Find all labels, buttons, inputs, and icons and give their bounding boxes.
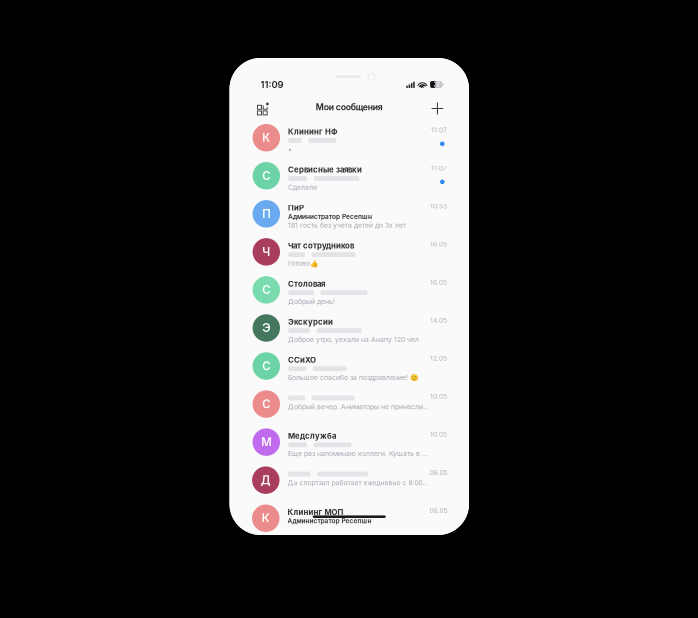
staticText: Добрый день! [288,297,335,305]
staticText: Администратор Ресепшн [288,213,372,220]
staticText: 22 [433,81,439,88]
staticText: Ч [262,245,270,259]
staticText: Сервисные заявки [288,165,362,174]
staticText: 181 гость без учета детей до 3х лет [288,221,406,229]
staticText: 16.05 [430,240,447,248]
button[interactable]: С [229,347,469,385]
staticText: 06.05 [429,506,447,515]
staticText: 10:53 [430,202,447,210]
staticText: С [262,359,270,373]
staticText: 12.05 [430,354,447,362]
staticText: Мои сообщения [316,102,383,112]
staticText: Готово👍 [288,259,318,267]
button[interactable]: П [229,195,469,233]
button[interactable]: Э [229,309,469,347]
staticText: М [261,435,271,449]
staticText: С [262,283,270,297]
staticText: Экскурсии [288,317,333,327]
button[interactable]: Ч [229,233,469,271]
staticText: Добрый вечер. Аниматоры не принесли кл… [288,403,430,411]
staticText: Большое спасибо за поздравление! 😊 [288,373,418,382]
button[interactable]: К [229,499,469,537]
staticText: С [262,397,270,411]
staticText: Клининг НФ [288,127,337,136]
staticText: К [262,511,270,525]
staticText: 14.05 [430,316,447,324]
staticText: Да спортзал работает ежедневно с 8:00 до… [287,479,429,487]
staticText: К [262,131,270,145]
button[interactable]: Новое сообщение [423,97,448,119]
staticText: П [262,207,270,221]
staticText: 11:07 [431,164,447,172]
button[interactable]: С [229,385,469,423]
staticText: 10.05 [430,430,447,438]
staticText: ССиХО [288,355,316,365]
button[interactable]: Д [229,461,469,499]
staticText: Администратор Ресепшн [287,517,371,525]
button[interactable]: К [229,119,469,157]
staticText: Сделали [288,183,317,191]
staticText: 16.05 [430,278,447,286]
button[interactable]: С [229,157,469,195]
staticText: Еще раз напоминаю коллеги. Кушать в меди… [288,449,430,458]
staticText: С [262,169,270,183]
staticText: Чат сотрудников [288,241,354,250]
staticText: • [288,145,292,153]
staticText: Д [261,473,271,487]
staticText: ПиР [288,203,304,212]
staticText: Столовая [288,279,325,288]
staticText: 06.05 [429,468,447,476]
staticText: 10.05 [430,392,447,400]
staticText: Доброе утро, уехали на Анапу 120 чел [288,335,419,344]
staticText: Медслужба [288,431,336,441]
button[interactable]: М [229,423,469,461]
staticText: 11:09 [260,79,283,90]
button[interactable]: Разделы [250,97,276,119]
staticText: Э [262,321,270,335]
staticText: 11:07 [431,126,447,134]
staticText: Клининг МОП [287,507,343,517]
button[interactable]: С [229,271,469,309]
